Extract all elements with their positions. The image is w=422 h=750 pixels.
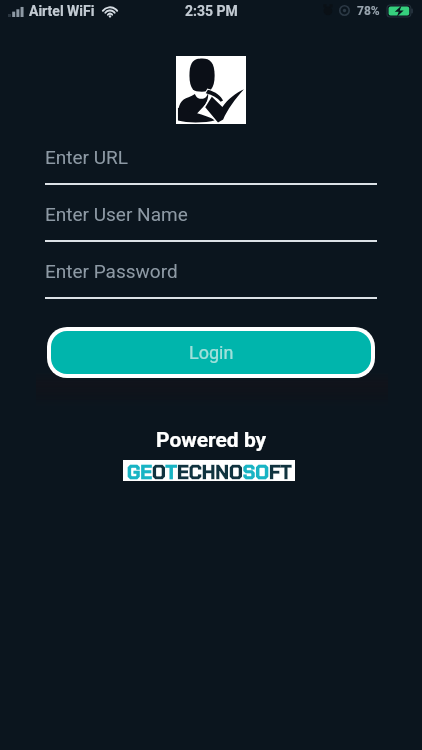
button[interactable]: Login [51, 331, 371, 374]
staticText: Airtel WiFi [29, 3, 95, 19]
staticText: Enter User Name [45, 203, 188, 225]
staticText: Enter URL [45, 146, 128, 168]
staticText: 2:35 PM [185, 3, 238, 19]
other: Wi-Fi [102, 5, 118, 17]
other: Signal strength [8, 7, 25, 17]
other: Battery charging [387, 5, 413, 17]
other: Do not disturb [339, 5, 350, 16]
staticText: Powered by [156, 428, 267, 453]
staticText: GEOTECHNOSOFT [127, 460, 292, 481]
button[interactable]: Enter Password [45, 256, 377, 299]
other: Alarm set [323, 4, 333, 16]
staticText: Login [189, 342, 234, 363]
staticText: 78% [357, 4, 380, 18]
button[interactable]: Enter User Name [45, 199, 377, 242]
button[interactable]: Enter URL [45, 142, 377, 185]
staticText: Enter Password [45, 260, 178, 282]
